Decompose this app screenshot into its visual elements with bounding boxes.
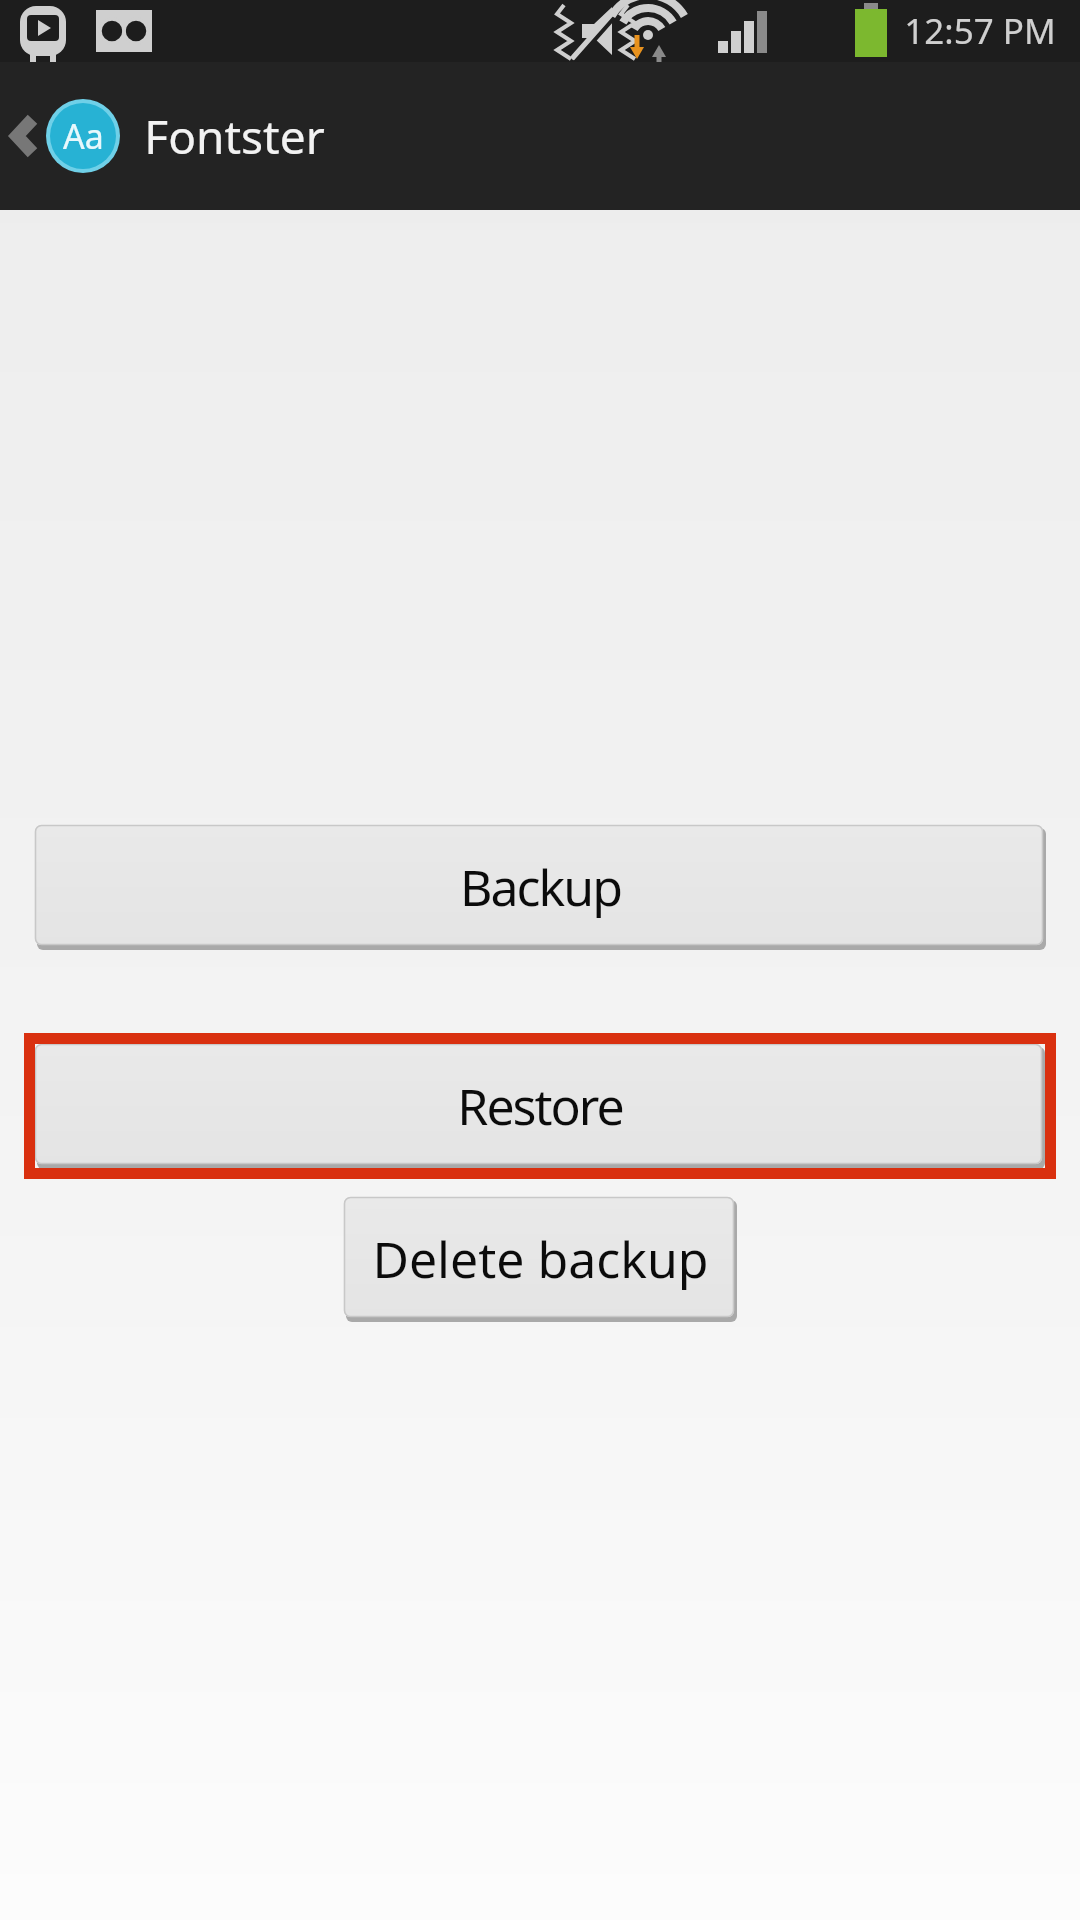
button[interactable]: Restore	[35, 1044, 1045, 1168]
staticText: Backup	[460, 853, 621, 921]
staticText: Delete backup	[372, 1225, 709, 1293]
button[interactable]: Backup	[35, 825, 1046, 949]
staticText: Restore	[457, 1072, 623, 1140]
staticText: Fontster	[144, 105, 325, 168]
button[interactable]: Navigate up, Fontster	[0, 99, 341, 173]
staticText: 12:57 PM	[904, 7, 1056, 55]
button[interactable]: Delete backup	[344, 1197, 737, 1321]
staticText: Aa	[63, 113, 104, 159]
